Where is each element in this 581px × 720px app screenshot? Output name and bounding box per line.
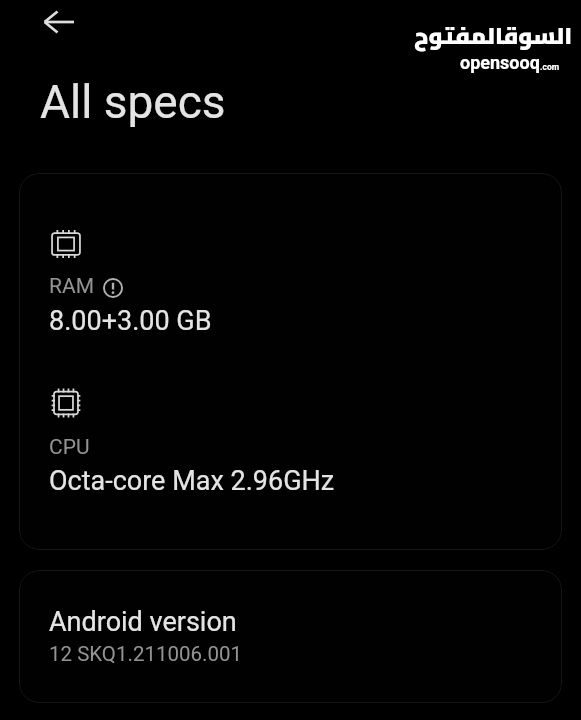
staticText: RAM xyxy=(49,274,94,299)
staticText: Octa-core Max 2.96GHz xyxy=(49,465,335,497)
staticText: 12 SKQ1.211006.001 xyxy=(49,642,242,666)
button[interactable]: About RAM xyxy=(103,278,123,298)
staticText: All specs xyxy=(40,75,226,129)
staticText: .com xyxy=(540,62,560,72)
staticText: CPU xyxy=(49,435,90,460)
staticText: السوقالمفتوح xyxy=(414,14,573,57)
staticText: Android version xyxy=(49,606,237,638)
staticText: opensooq xyxy=(460,52,540,73)
button[interactable]: RAM xyxy=(19,173,562,550)
button[interactable]: Back xyxy=(29,0,89,44)
button[interactable]: Android version xyxy=(19,570,562,703)
staticText: 8.00+3.00 GB xyxy=(49,305,212,337)
